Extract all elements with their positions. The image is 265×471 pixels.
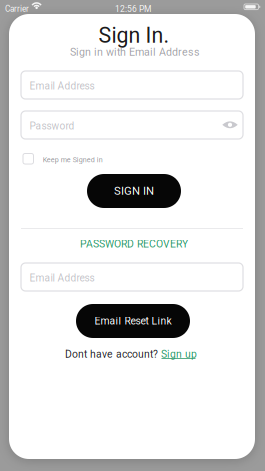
staticText: Carrier [5,4,29,14]
staticText: Sign in with Email Address [70,46,200,58]
button[interactable]: Keep me Signed in [22,152,132,166]
staticText: Dont have account? [65,348,158,360]
staticText: Email Reset Link [94,315,171,327]
staticText: 12:56 PM [115,4,151,14]
button[interactable]: Sign up [161,348,205,360]
staticText: Password [29,120,74,132]
staticText: Email Address [29,272,94,284]
staticText: Keep me Signed in [43,156,103,164]
staticText: Email Address [29,80,94,92]
staticText: SIGN IN [114,184,154,198]
button[interactable]: SIGN IN [87,174,181,208]
staticText: PASSWORD RECOVERY [80,238,188,250]
button[interactable]: Email Reset Link [76,304,190,338]
staticText: Sign up [161,348,197,360]
staticText: Sign In. [98,23,169,48]
